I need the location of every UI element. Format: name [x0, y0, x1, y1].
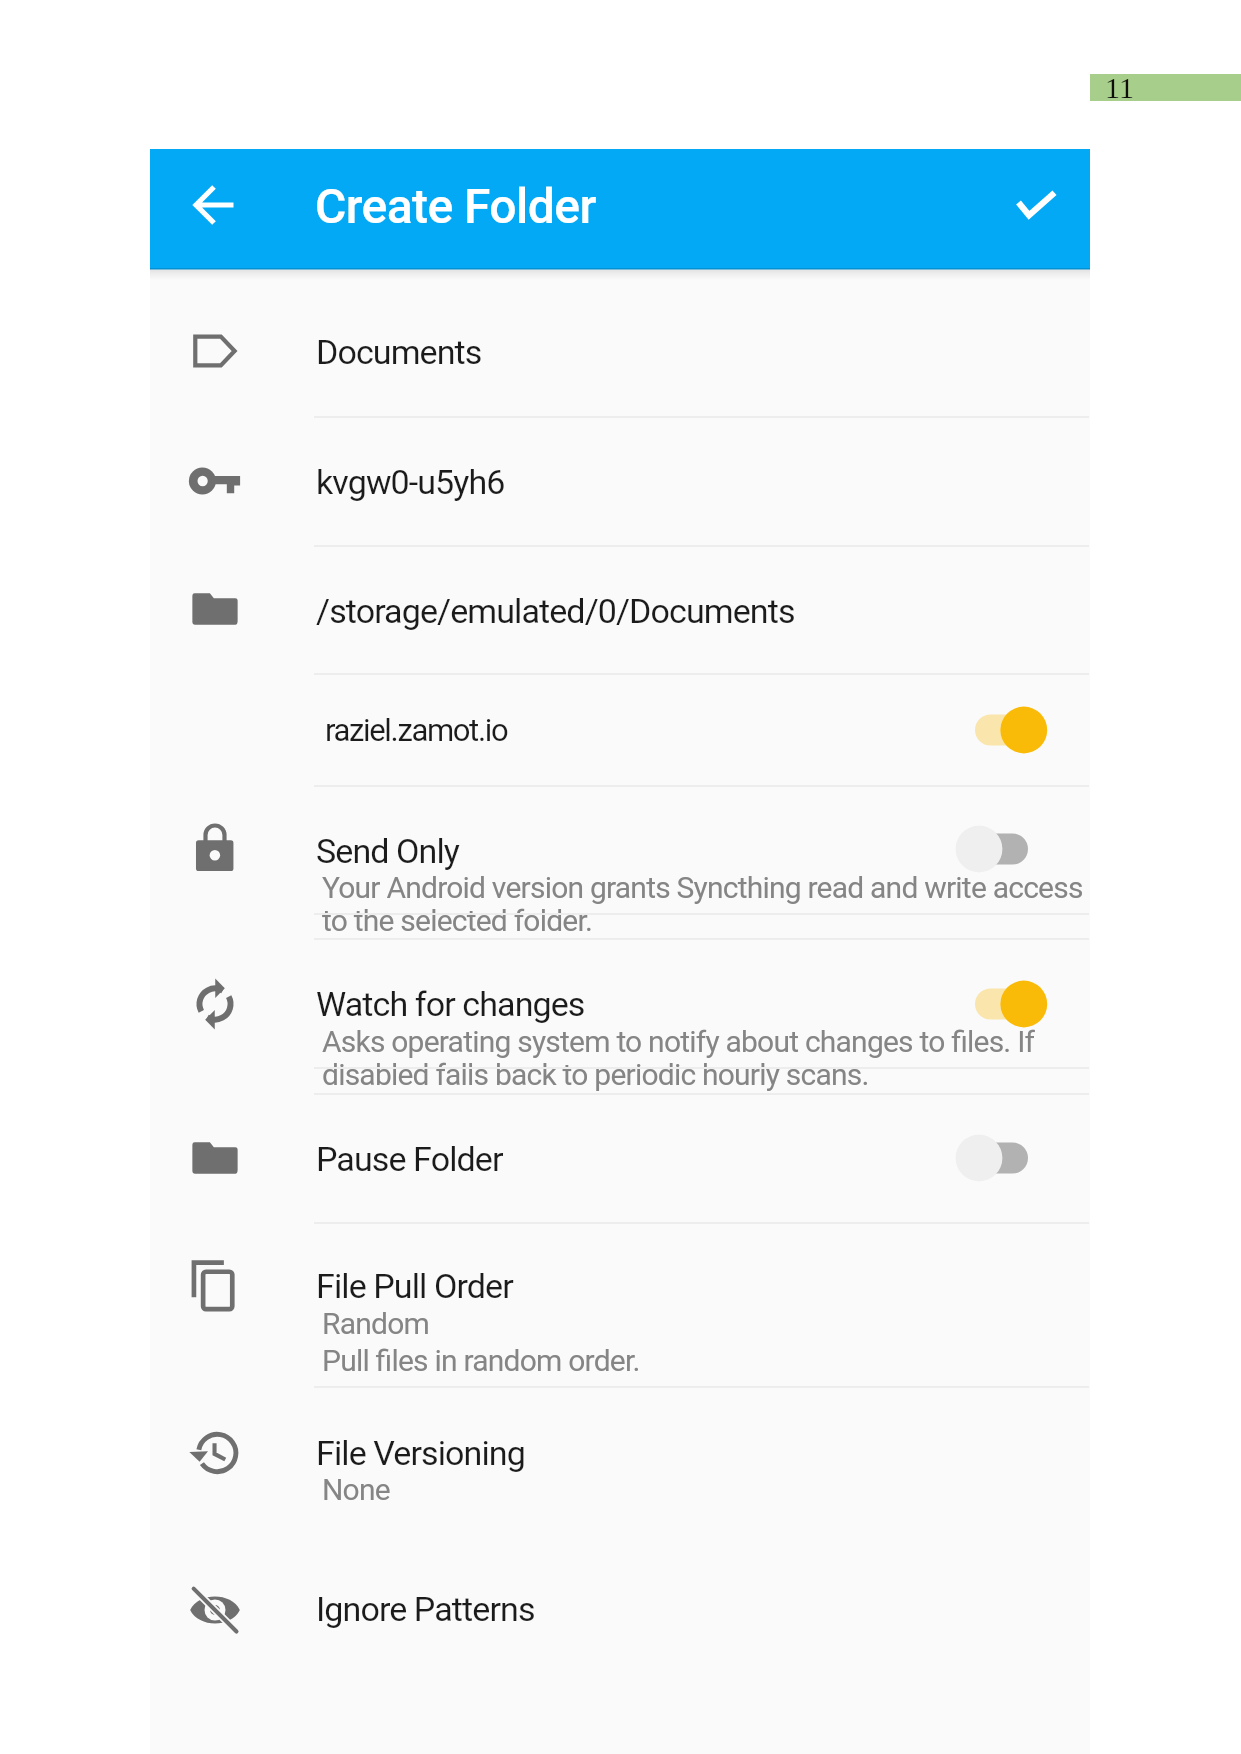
- staticText: disabled falls back to periodic hourly s…: [322, 1057, 869, 1092]
- button[interactable]: [150, 1093, 1090, 1223]
- button[interactable]: [150, 673, 1090, 785]
- button[interactable]: [150, 270, 1090, 416]
- button[interactable]: raziel.zamot.io: [932, 695, 1062, 765]
- staticText: Pull files in random order.: [322, 1343, 640, 1378]
- button[interactable]: Pause Folder: [932, 1123, 1062, 1193]
- button[interactable]: [150, 545, 1090, 673]
- staticText: to the selected folder.: [322, 903, 593, 938]
- staticText: /storage/emulated/0/Documents: [316, 591, 795, 631]
- staticText: Documents: [316, 332, 482, 372]
- staticText: Random: [322, 1306, 430, 1341]
- button[interactable]: [150, 938, 1090, 1093]
- staticText: None: [322, 1472, 390, 1507]
- staticText: kvgw0-u5yh6: [316, 462, 505, 502]
- staticText: raziel.zamot.io: [325, 712, 508, 748]
- staticText: File Pull Order: [316, 1266, 513, 1306]
- button[interactable]: Back: [168, 168, 238, 238]
- staticText: File Versioning: [316, 1433, 525, 1473]
- staticText: Pause Folder: [316, 1139, 503, 1179]
- button[interactable]: [150, 1540, 1090, 1700]
- staticText: 11: [1105, 71, 1134, 98]
- button[interactable]: Save folder: [1000, 173, 1080, 253]
- staticText: Send Only: [316, 831, 460, 871]
- button[interactable]: [150, 1222, 1090, 1386]
- button[interactable]: Send Only: [932, 814, 1062, 884]
- button[interactable]: [150, 785, 1090, 938]
- button[interactable]: Watch for changes: [932, 969, 1062, 1039]
- button[interactable]: [150, 1386, 1090, 1540]
- staticText: Your Android version grants Syncthing re…: [322, 870, 1083, 905]
- staticText: Watch for changes: [316, 984, 585, 1024]
- button[interactable]: [150, 416, 1090, 545]
- staticText: Create Folder: [315, 178, 596, 234]
- staticText: Ignore Patterns: [316, 1589, 535, 1629]
- staticText: Asks operating system to notify about ch…: [322, 1024, 1035, 1059]
